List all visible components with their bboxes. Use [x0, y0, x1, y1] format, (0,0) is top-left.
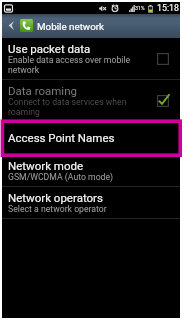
staticText: Mobile network [37, 21, 105, 32]
staticText: Network mode [8, 159, 84, 172]
staticText: 31% [135, 5, 145, 11]
button[interactable]: Network operators [2, 187, 180, 218]
staticText: Access Point Names [8, 131, 115, 144]
button[interactable]: Access Point Names [2, 121, 180, 154]
button[interactable]: Navigate up [2, 14, 18, 38]
staticText: Select a network operator [8, 204, 107, 214]
staticText: Connect to data services when roaming [8, 97, 142, 117]
button[interactable]: Network mode [2, 155, 180, 186]
staticText: Use packet data [8, 42, 91, 55]
staticText: Data roaming [8, 84, 77, 97]
staticText: Enable data access over mobile network [8, 55, 142, 75]
staticText: Network operators [8, 191, 103, 204]
button[interactable]: Use packet data [2, 38, 180, 79]
button[interactable]: Data roaming [2, 80, 180, 120]
staticText: GSM/WCDMA (Auto mode) [8, 172, 114, 182]
staticText: 15:18 [157, 3, 179, 13]
